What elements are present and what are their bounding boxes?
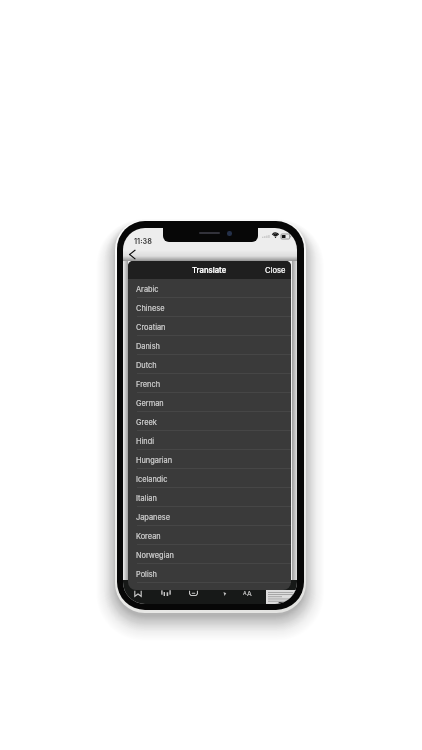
staticText: Arabic	[136, 285, 159, 294]
button[interactable]: Dutch	[128, 355, 291, 374]
staticText: Greek	[136, 418, 157, 427]
button[interactable]: Page preview	[266, 590, 297, 604]
staticText: Close	[265, 266, 286, 275]
button[interactable]: Back	[127, 248, 138, 261]
button[interactable]: Greek	[128, 412, 291, 431]
staticText: German	[136, 399, 164, 408]
button[interactable]: Icelandic	[128, 469, 291, 488]
staticText: A	[243, 590, 247, 596]
button[interactable]: Hungarian	[128, 450, 291, 469]
button[interactable]: Bookmark	[134, 590, 142, 597]
button[interactable]: Croatian	[128, 317, 291, 336]
staticText: Hungarian	[136, 456, 173, 465]
button[interactable]: Contents	[161, 590, 171, 596]
button[interactable]: Korean	[128, 526, 291, 545]
staticText: Italian	[136, 494, 157, 503]
staticText: Danish	[136, 342, 160, 351]
button[interactable]: German	[128, 393, 291, 412]
button[interactable]: A	[243, 589, 253, 596]
staticText: A	[247, 589, 252, 596]
button[interactable]: Italian	[128, 488, 291, 507]
button[interactable]: Chinese	[128, 298, 291, 317]
button[interactable]: Close	[258, 263, 291, 278]
staticText: Hindi	[136, 437, 154, 446]
button[interactable]: Danish	[128, 336, 291, 355]
button[interactable]: Polish	[128, 564, 291, 583]
button[interactable]: Highlight	[220, 590, 228, 597]
button[interactable]: French	[128, 374, 291, 393]
staticText: Translate	[192, 266, 227, 275]
staticText: Korean	[136, 532, 161, 541]
button[interactable]: Japanese	[128, 507, 291, 526]
staticText: Icelandic	[136, 475, 168, 484]
staticText: Japanese	[136, 513, 171, 522]
staticText: Polish	[136, 570, 157, 579]
button[interactable]: Reading mode	[189, 590, 198, 596]
staticText: French	[136, 380, 161, 389]
staticText: Chinese	[136, 304, 165, 313]
button[interactable]: Hindi	[128, 431, 291, 450]
staticText: Norwegian	[136, 551, 174, 560]
staticText: Croatian	[136, 323, 166, 332]
staticText: Dutch	[136, 361, 157, 370]
button[interactable]: Arabic	[128, 279, 291, 298]
button[interactable]: Norwegian	[128, 545, 291, 564]
staticText: 11:38	[134, 237, 152, 246]
